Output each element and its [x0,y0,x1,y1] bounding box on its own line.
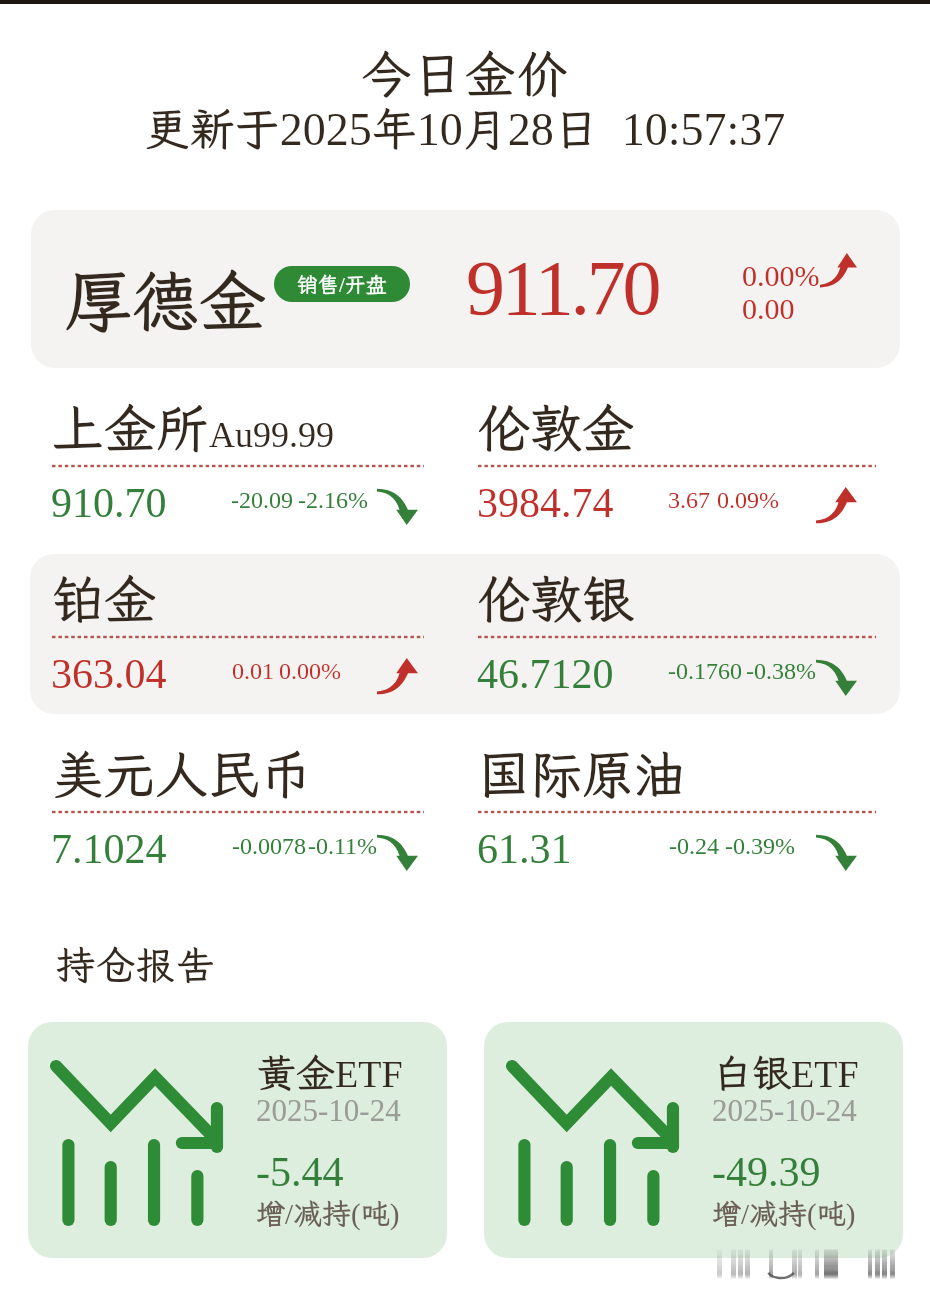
staticText: -0.11% [308,833,378,860]
staticText: 增/减持(吨) [712,1194,856,1232]
staticText: 上金所 [52,393,209,461]
button[interactable]: 伦敦银 [478,571,876,693]
staticText: 2025-10-24 [256,1093,401,1127]
staticText: 增/减持(吨) [256,1194,400,1232]
staticText: -0.38% [746,658,816,685]
staticText: 61.31 [477,826,572,873]
staticText: 363.04 [51,651,167,698]
button[interactable]: 美元人民币 [52,746,424,868]
staticText: 铂金 [52,564,157,632]
staticText: 0.00% [279,658,341,685]
button[interactable]: 伦敦金 [478,400,876,522]
staticText: -5.44 [256,1149,344,1196]
staticText: 国际原油 [478,739,687,807]
staticText: -0.1760 [668,658,742,685]
other: 下跌 [377,487,418,525]
other: 下跌 [816,658,857,696]
staticText: -2.16% [298,487,368,514]
staticText: 黄金ETF [257,1047,403,1098]
button[interactable]: 国际原油 [478,746,876,868]
staticText: 911.70 [466,244,659,330]
button[interactable]: 黄金ETF [28,1022,447,1258]
staticText: -0.39% [725,833,795,860]
staticText: 3.67 [668,487,710,514]
button[interactable]: 厚德金 [31,210,900,368]
button[interactable]: 铂金 [52,571,424,693]
staticText: 0.09% [717,487,779,514]
staticText: Au99.99 [209,415,334,455]
staticText: -49.39 [712,1149,821,1196]
other: 上涨 [820,253,857,289]
other: 上涨 [816,487,857,525]
other: 下跌 [377,833,418,871]
staticText: 厚德金 [65,256,266,344]
staticText: 910.70 [51,480,167,527]
staticText: 0.01 [232,658,274,685]
button[interactable]: 白银ETF [484,1022,903,1258]
staticText: 持仓报告 [56,939,217,990]
staticText: 销售/开盘 [297,270,387,298]
other: 上涨 [377,658,418,696]
staticText: 0.00% [742,259,820,292]
other: 下跌 [816,833,857,871]
staticText: 今日金价 [0,40,930,106]
button[interactable]: 销售/开盘 [274,266,410,302]
staticText: 7.1024 [51,826,167,873]
staticText: 0.00 [742,292,795,325]
staticText: 伦敦金 [478,393,635,461]
staticText: -0.0078 [232,833,306,860]
staticText: 白银ETF [713,1047,859,1098]
staticText: -20.09 [231,487,293,514]
staticText: 更新于2025年10月28日 10:57:37 [0,99,930,158]
staticText: 2025-10-24 [712,1093,857,1127]
staticText: -0.24 [669,833,719,860]
staticText: 3984.74 [477,480,614,527]
staticText: 美元人民币 [52,739,313,807]
staticText: 46.7120 [477,651,614,698]
staticText: 伦敦银 [478,564,635,632]
button[interactable]: 上金所 [52,400,424,522]
